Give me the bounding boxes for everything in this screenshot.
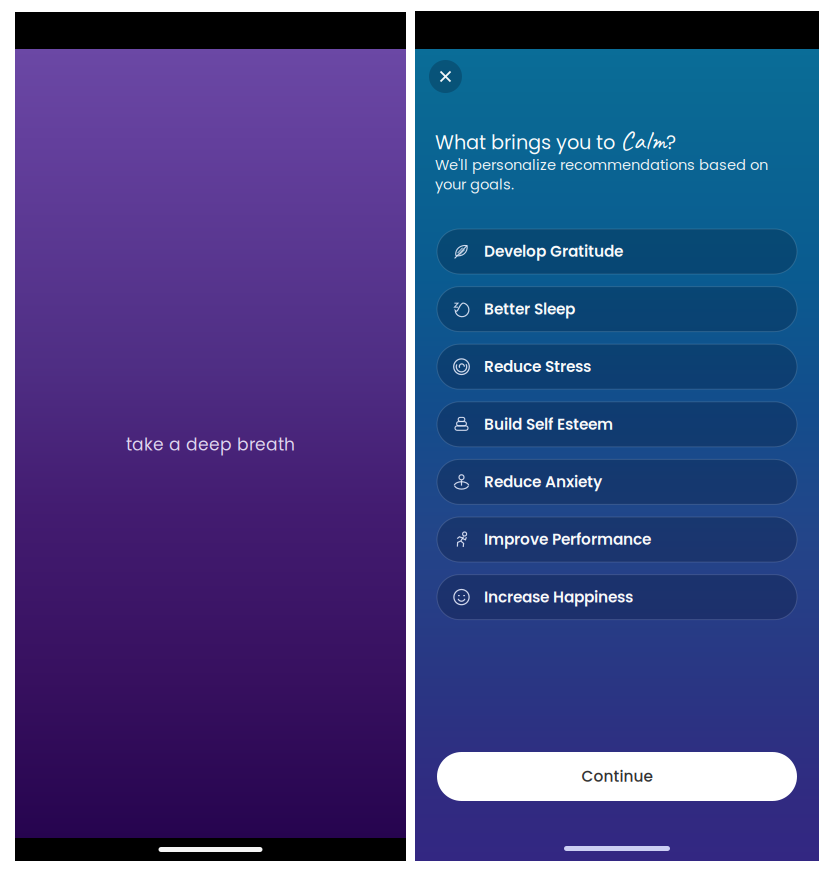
staticText: What brings you to Calm? [435, 124, 676, 157]
staticText: Develop Gratitude [484, 241, 623, 262]
staticText: your goals. [435, 174, 514, 194]
staticText: Better Sleep [484, 298, 575, 320]
staticText: Improve Performance [484, 529, 651, 550]
staticText: Build Self Esteem [484, 414, 613, 435]
staticText: Reduce Anxiety [484, 471, 602, 493]
button[interactable]: Continue [437, 752, 797, 801]
button[interactable]: Better Sleep [437, 287, 797, 332]
button[interactable]: Improve Performance [437, 517, 797, 562]
button[interactable]: Close [429, 60, 462, 93]
staticText: Continue [581, 766, 652, 787]
button[interactable]: Reduce Stress [437, 344, 797, 389]
button[interactable]: Increase Happiness [437, 575, 797, 620]
button[interactable]: Reduce Anxiety [437, 459, 797, 504]
staticText: take a deep breath [126, 433, 295, 456]
staticText: We'll personalize recommendations based … [435, 154, 768, 175]
staticText: Reduce Stress [484, 356, 591, 377]
staticText: Increase Happiness [484, 586, 633, 608]
button[interactable]: Build Self Esteem [437, 402, 797, 447]
button[interactable]: Develop Gratitude [437, 229, 797, 274]
